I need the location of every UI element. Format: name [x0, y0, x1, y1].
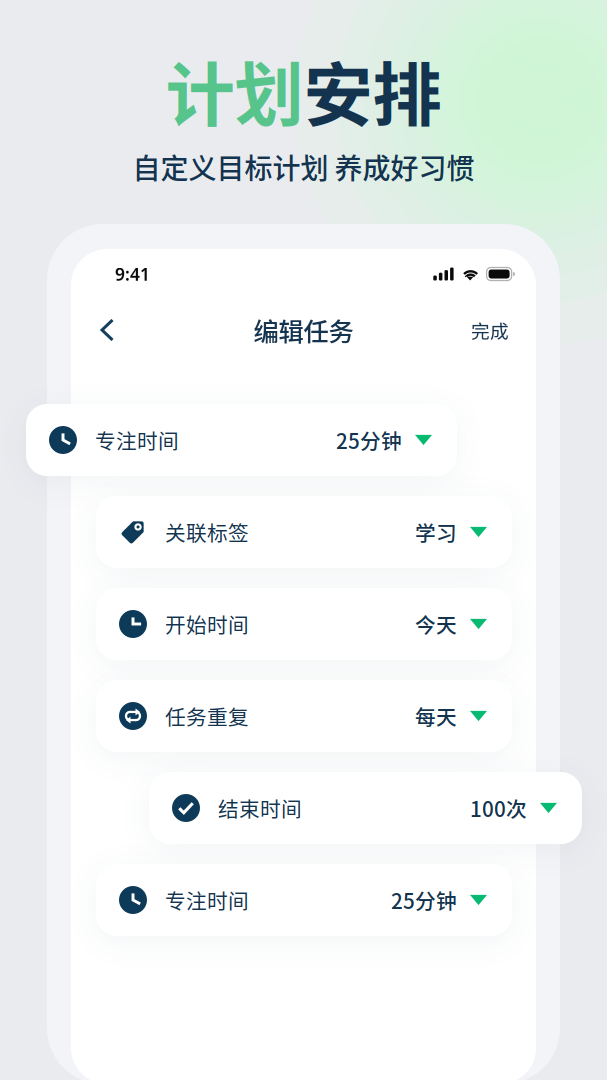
button[interactable]: 任务重复: [96, 680, 512, 752]
staticText: 编辑任务: [253, 312, 353, 348]
staticText: 25分钟: [336, 425, 402, 455]
staticText: 任务重复: [165, 701, 249, 731]
staticText: 9:41: [115, 262, 150, 285]
staticText: 每天: [415, 701, 457, 731]
button[interactable]: 专注时间: [26, 404, 457, 476]
button[interactable]: 开始时间: [96, 588, 512, 660]
staticText: 学习: [415, 517, 457, 547]
staticText: 自定义目标计划 养成好习惯: [132, 146, 474, 187]
staticText: 25分钟: [391, 885, 457, 915]
button[interactable]: 专注时间: [96, 864, 512, 936]
staticText: 关联标签: [165, 517, 249, 547]
button[interactable]: Back: [86, 306, 129, 353]
button[interactable]: 结束时间: [149, 772, 582, 844]
button[interactable]: 关联标签: [96, 496, 512, 568]
staticText: 安排: [303, 40, 441, 140]
staticText: 完成: [471, 316, 509, 343]
button[interactable]: 完成: [463, 306, 517, 353]
staticText: 结束时间: [218, 793, 302, 823]
staticText: 100次: [470, 793, 527, 823]
staticText: 专注时间: [95, 425, 179, 455]
staticText: 今天: [415, 609, 457, 639]
staticText: 计划: [165, 40, 303, 140]
staticText: 专注时间: [165, 885, 249, 915]
staticText: 开始时间: [165, 609, 249, 639]
